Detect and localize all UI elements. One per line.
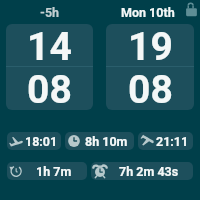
- staticText: 1h 7m: [36, 164, 72, 179]
- staticText: 19: [128, 24, 173, 66]
- staticText: 8h 10m: [85, 134, 128, 149]
- staticText: 7h 2m 43s: [119, 164, 179, 179]
- button[interactable]: Arrival time: [138, 132, 193, 150]
- staticText: -5h: [40, 5, 60, 19]
- staticText: 14: [27, 24, 72, 66]
- other: Remaining: [93, 164, 107, 178]
- button[interactable]: Elapsed: [7, 162, 87, 180]
- button[interactable]: Flight duration: [65, 132, 134, 150]
- other: Departure time: [9, 134, 23, 148]
- button[interactable]: Locked: [184, 2, 198, 18]
- other: Elapsed: [9, 164, 23, 178]
- staticText: 08: [128, 67, 173, 110]
- other: Arrival time: [140, 134, 154, 148]
- staticText: 08: [27, 67, 72, 110]
- other: Flight duration: [67, 134, 81, 148]
- staticText: Mon 10th: [121, 5, 175, 19]
- button[interactable]: Departure time: [7, 132, 61, 150]
- button[interactable]: 19: [106, 24, 194, 110]
- button[interactable]: Remaining: [91, 162, 193, 180]
- button[interactable]: 14: [6, 24, 93, 110]
- staticText: 21:11: [156, 134, 189, 149]
- staticText: 18:01: [25, 134, 58, 149]
